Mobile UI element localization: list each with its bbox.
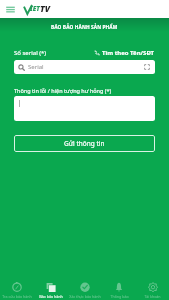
staticText: Tra cứu bảo hành bbox=[2, 294, 32, 299]
button[interactable]: Thông báo bbox=[102, 278, 136, 299]
staticText: Tài khoản bbox=[144, 294, 161, 299]
staticText: BÁO BẢO HÀNH SẢN PHẨM bbox=[51, 24, 118, 31]
staticText: Gửi thông tin bbox=[64, 139, 105, 148]
staticText: Tìm theo Tên/SĐT bbox=[102, 49, 155, 57]
button[interactable] bbox=[14, 96, 155, 121]
staticText: Số serial (*) bbox=[14, 49, 47, 57]
staticText: Serial bbox=[28, 63, 44, 71]
other: Scan bbox=[143, 63, 151, 71]
button[interactable]: Xác thực bảo hành bbox=[68, 278, 102, 299]
staticText: Xác thực bảo hành bbox=[69, 294, 101, 299]
button[interactable]: Gửi thông tin bbox=[14, 135, 155, 152]
button[interactable]: Menu bbox=[4, 3, 17, 16]
staticText: Thông tin lỗi / hiện tượng hư hỏng (*) bbox=[14, 87, 112, 94]
button[interactable]: Tra cứu bảo hành bbox=[0, 278, 34, 299]
staticText: Báo bảo hành bbox=[39, 294, 63, 299]
button[interactable]: Tìm theo Tên/SĐT bbox=[94, 49, 155, 57]
staticText: TV bbox=[40, 3, 51, 15]
staticText: IET bbox=[30, 4, 40, 13]
button[interactable]: Serial bbox=[14, 60, 155, 74]
button[interactable]: Báo bảo hành bbox=[34, 278, 68, 299]
button[interactable]: Tài khoản bbox=[136, 278, 169, 299]
staticText: Thông báo bbox=[110, 294, 129, 299]
